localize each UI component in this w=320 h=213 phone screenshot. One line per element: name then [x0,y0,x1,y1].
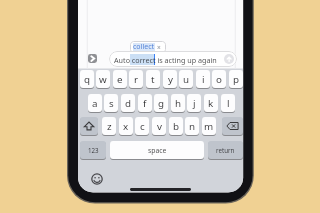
button[interactable] [224,54,234,64]
staticText: x [123,120,129,133]
button[interactable]: j [187,94,201,112]
button[interactable]: 123 [80,141,106,159]
button[interactable]: q [80,70,94,88]
button[interactable]: e [113,70,127,88]
button[interactable]: k [204,94,218,112]
staticText: p [233,73,240,86]
button[interactable]: o [212,70,226,88]
button[interactable]: c [135,117,149,135]
staticText: e [117,73,123,86]
button[interactable]: f [138,94,152,112]
button[interactable]: y [163,70,177,88]
staticText: Auto correct is acting up again [114,55,217,65]
button[interactable]: collect [130,41,166,53]
button[interactable]: p [229,70,243,88]
staticText: h [175,97,182,110]
button[interactable]: u [179,70,193,88]
button[interactable]: l [221,94,235,112]
staticText: d [125,97,132,110]
button[interactable]: g [154,94,168,112]
button[interactable]: r [129,70,143,88]
staticText: f [143,97,147,110]
button[interactable]: i [196,70,210,88]
button[interactable]: z [102,117,116,135]
staticText: i [202,73,205,86]
staticText: 123 [88,146,99,154]
staticText: c [140,120,145,133]
button[interactable]: d [121,94,135,112]
button[interactable]: a [88,94,102,112]
staticText: l [227,97,230,110]
staticText: a [92,97,98,110]
staticText: y [168,73,173,86]
staticText: w [99,73,107,86]
staticText: g [158,97,165,110]
staticText: m [204,120,214,133]
button[interactable]: x [119,117,133,135]
button[interactable]: w [96,70,110,88]
button[interactable]: s [104,94,118,112]
staticText: collect [133,42,155,52]
button[interactable]: Auto correct is acting up again [109,51,237,67]
staticText: r [134,73,139,86]
staticText: space [148,146,167,155]
staticText: s [109,97,114,110]
button[interactable] [88,54,97,63]
button[interactable]: m [202,117,216,135]
button[interactable]: v [152,117,166,135]
staticText: return [216,146,235,154]
staticText: b [173,120,180,133]
button[interactable]: h [171,94,185,112]
staticText: o [216,73,222,86]
staticText: k [208,97,214,110]
staticText: × [157,43,161,52]
staticText: v [157,120,162,133]
button[interactable]: return [208,141,243,159]
button[interactable]: space [110,141,204,159]
staticText: z [107,120,112,133]
staticText: j [193,97,196,110]
button[interactable] [222,117,243,135]
staticText: n [189,120,196,133]
button[interactable]: n [185,117,199,135]
button[interactable] [80,117,98,135]
button[interactable]: b [169,117,183,135]
staticText: q [84,73,91,86]
staticText: u [183,73,190,86]
button[interactable]: t [146,70,160,88]
staticText: t [151,73,155,86]
